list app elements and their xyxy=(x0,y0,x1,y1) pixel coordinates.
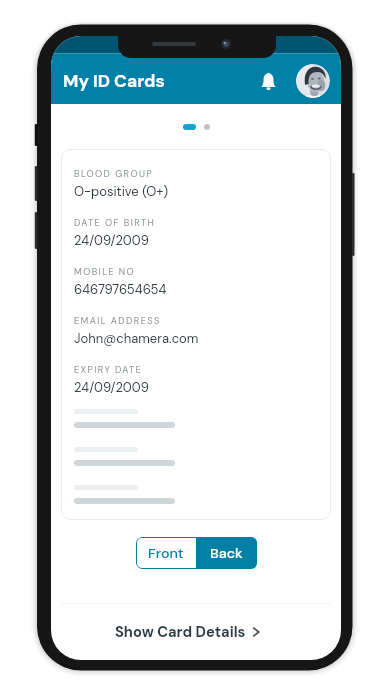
staticText: DATE OF BIRTH xyxy=(74,217,156,229)
staticText: EMAIL ADDRESS xyxy=(74,315,161,327)
staticText: BLOOD GROUP xyxy=(74,168,154,180)
button[interactable]: Page 1 xyxy=(183,124,196,130)
staticText: MOBILE NO xyxy=(74,266,136,278)
staticText: John@chamera.com xyxy=(74,330,199,347)
staticText: Front xyxy=(148,544,184,563)
staticText: My ID Cards xyxy=(63,70,165,93)
button[interactable]: Front xyxy=(136,537,196,569)
staticText: Back xyxy=(210,544,243,563)
button[interactable]: Notifications xyxy=(252,65,284,97)
button[interactable]: Back xyxy=(196,537,257,569)
staticText: Show Card Details xyxy=(115,622,246,641)
staticText: 24/09/2009 xyxy=(74,232,149,249)
button[interactable]: Page 2 xyxy=(204,124,210,130)
button[interactable]: Show Card Details xyxy=(115,622,260,641)
staticText: O-positive (O+) xyxy=(74,183,169,200)
staticText: 24/09/2009 xyxy=(74,379,149,396)
staticText: EXPIRY DATE xyxy=(74,364,143,376)
staticText: 646797654654 xyxy=(74,281,167,298)
button[interactable]: Profile xyxy=(296,64,330,98)
